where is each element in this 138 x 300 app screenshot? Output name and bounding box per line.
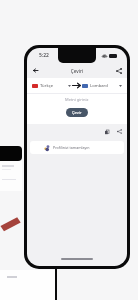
staticText: Çeviri	[41, 68, 113, 74]
button[interactable]: Profilinizi tamamlayın	[30, 141, 124, 154]
staticText: Çevir	[72, 110, 82, 115]
staticText: Profilinizi tamamlayın	[53, 145, 90, 150]
staticText: 5:22	[39, 52, 49, 59]
staticText: Türkçe	[40, 83, 54, 89]
staticText: Metni giriniz	[65, 97, 89, 102]
button[interactable]: Share result	[115, 128, 123, 135]
button[interactable]: Share	[113, 65, 124, 76]
button[interactable]: Türkçe	[32, 83, 72, 89]
staticText: Lombard	[90, 83, 108, 89]
button[interactable]: Back	[30, 65, 41, 76]
button[interactable]: Lombard	[81, 83, 122, 89]
button[interactable]: Copy	[103, 128, 111, 135]
button[interactable]: Çevir	[66, 108, 88, 117]
